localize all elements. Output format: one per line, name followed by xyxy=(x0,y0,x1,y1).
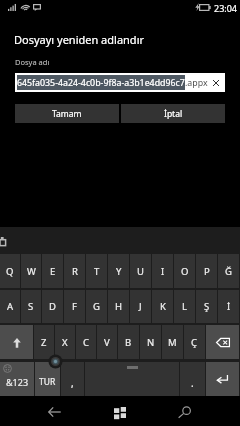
button[interactable]: A xyxy=(0,290,20,323)
staticText: B xyxy=(125,336,132,349)
staticText: Ğ xyxy=(225,265,232,278)
button[interactable]: H xyxy=(108,290,129,323)
button[interactable]: Q xyxy=(0,254,20,288)
button[interactable]: Back xyxy=(22,396,87,426)
staticText: U xyxy=(137,265,144,278)
button[interactable]: , xyxy=(61,362,84,396)
other: Keyboard options xyxy=(0,237,7,246)
staticText: D xyxy=(49,300,56,313)
button[interactable]: U xyxy=(130,254,151,288)
button[interactable]: 645fa035-4a24-4c0b-9f8a-a3b1e4dd96c7 xyxy=(15,73,225,92)
button[interactable]: W xyxy=(21,254,41,288)
staticText: 23:04 xyxy=(214,2,238,14)
staticText: Z xyxy=(41,336,47,349)
staticText: J xyxy=(139,300,142,313)
staticText: 645fa035-4a24-4c0b-9f8a-a3b1e4dd96c7 xyxy=(17,77,185,89)
staticText: &123 xyxy=(6,376,29,388)
other: Clear text xyxy=(213,80,219,86)
button[interactable]: J xyxy=(130,290,151,323)
button[interactable]: İptal xyxy=(121,104,225,123)
staticText: E xyxy=(50,265,56,278)
staticText: N xyxy=(147,336,155,349)
button[interactable]: Search xyxy=(152,396,217,426)
button[interactable]: C xyxy=(76,325,96,359)
staticText: T xyxy=(94,265,100,278)
button[interactable]: O xyxy=(174,254,195,288)
button[interactable]: Space xyxy=(85,362,179,396)
staticText: Tamam xyxy=(52,108,82,120)
staticText: .appx xyxy=(185,77,208,89)
staticText: . xyxy=(191,376,194,390)
button[interactable]: Ç xyxy=(184,325,205,359)
button[interactable]: Backspace xyxy=(206,325,239,359)
staticText: H xyxy=(115,300,123,313)
staticText: Ş xyxy=(204,300,210,313)
staticText: Ç xyxy=(191,336,198,349)
button[interactable]: G xyxy=(86,290,107,323)
button[interactable]: Z xyxy=(34,325,54,359)
staticText: M xyxy=(168,336,177,349)
staticText: X xyxy=(62,336,68,349)
staticText: Q xyxy=(6,265,14,278)
button[interactable]: P xyxy=(196,254,217,288)
button[interactable]: Ş xyxy=(196,290,217,323)
button[interactable]: . xyxy=(180,362,205,396)
staticText: Y xyxy=(116,265,122,278)
button[interactable]: V xyxy=(97,325,117,359)
button[interactable]: I xyxy=(152,254,173,288)
button[interactable]: Start xyxy=(87,396,152,426)
staticText: R xyxy=(72,265,78,278)
button[interactable]: &123 xyxy=(0,362,34,396)
button[interactable]: R xyxy=(64,254,85,288)
button[interactable]: F xyxy=(64,290,85,323)
button[interactable]: Enter xyxy=(206,362,239,396)
button[interactable]: E xyxy=(42,254,63,288)
staticText: W xyxy=(27,265,36,278)
button[interactable]: İ xyxy=(218,290,239,323)
button[interactable]: M xyxy=(162,325,183,359)
staticText: G xyxy=(93,300,100,313)
button[interactable]: B xyxy=(118,325,139,359)
staticText: S xyxy=(28,300,34,313)
button[interactable]: Y xyxy=(108,254,129,288)
staticText: V xyxy=(104,336,110,349)
button[interactable]: X xyxy=(55,325,75,359)
button[interactable]: D xyxy=(42,290,63,323)
button[interactable]: Ğ xyxy=(218,254,239,288)
staticText: I xyxy=(161,265,165,278)
button[interactable]: K xyxy=(152,290,173,323)
staticText: İptal xyxy=(164,108,183,120)
staticText: C xyxy=(83,336,90,349)
button[interactable]: Tamam xyxy=(15,104,119,123)
staticText: Dosyayı yeniden adlandır xyxy=(14,32,145,47)
button[interactable]: Shift xyxy=(0,325,33,359)
staticText: O xyxy=(181,265,189,278)
staticText: K xyxy=(160,300,166,313)
button[interactable]: N xyxy=(140,325,161,359)
staticText: TUR xyxy=(39,376,56,388)
button[interactable]: L xyxy=(174,290,195,323)
staticText: , xyxy=(71,376,74,390)
staticText: A xyxy=(7,300,14,313)
button[interactable]: TUR xyxy=(35,362,60,396)
staticText: L xyxy=(182,300,187,313)
staticText: F xyxy=(72,300,77,313)
staticText: İ xyxy=(227,300,231,313)
staticText: P xyxy=(204,265,210,278)
staticText: Dosya adı xyxy=(15,57,50,67)
button[interactable]: T xyxy=(86,254,107,288)
button[interactable]: S xyxy=(21,290,41,323)
